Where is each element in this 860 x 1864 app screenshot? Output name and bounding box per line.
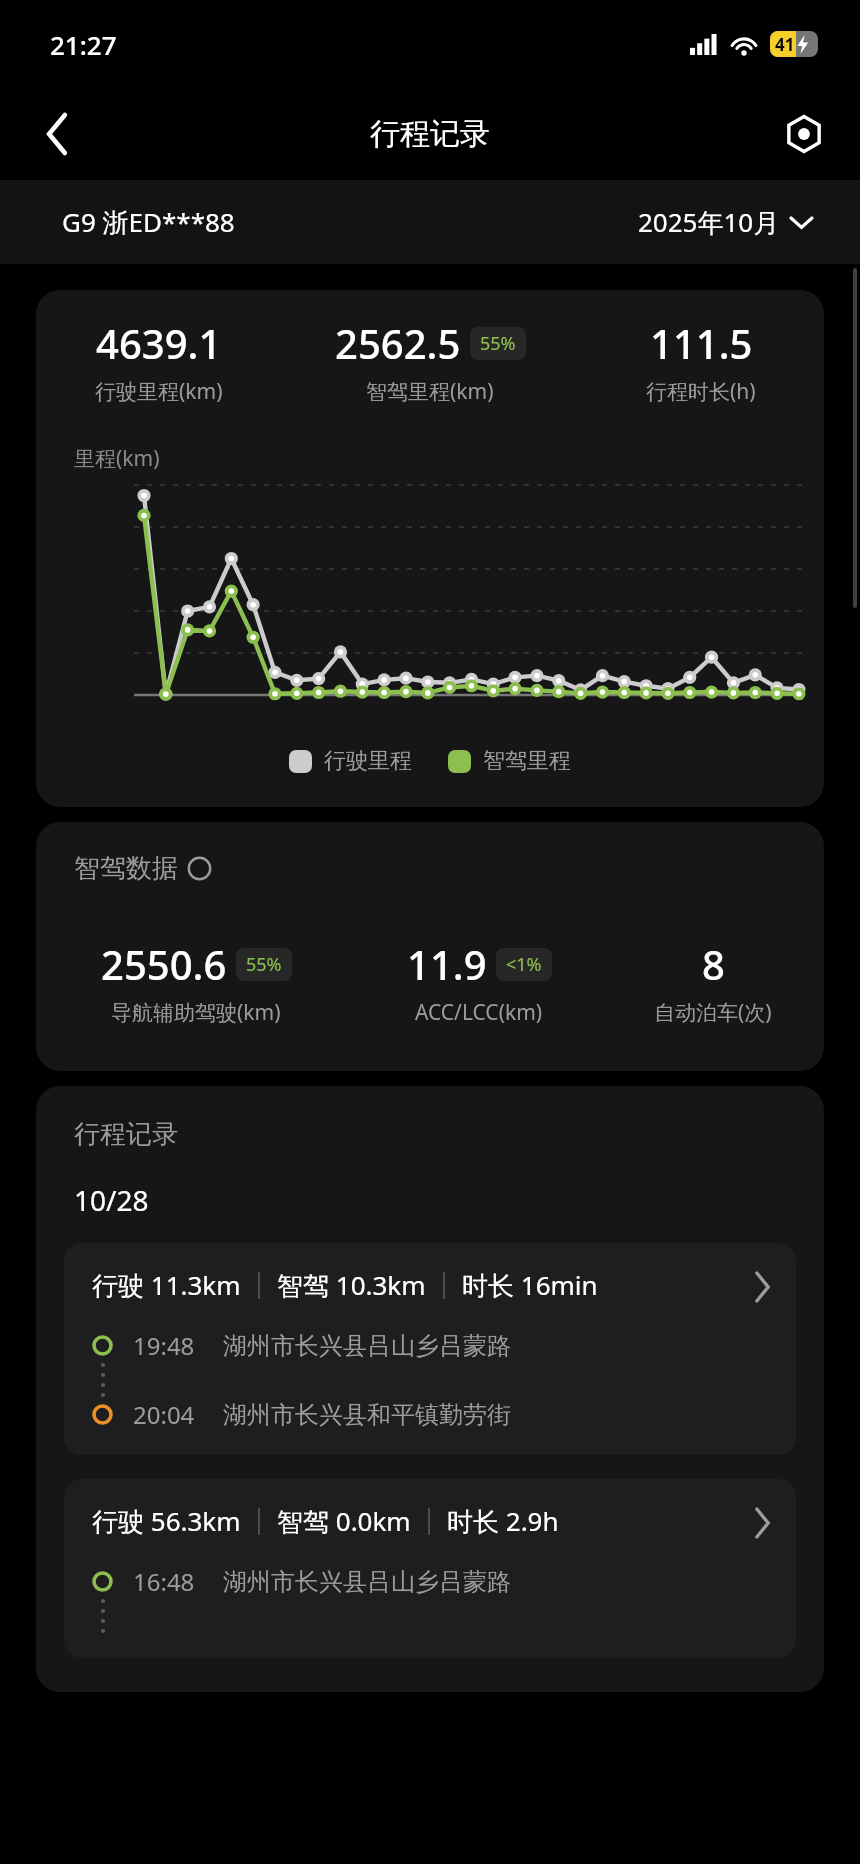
staticText: 2025年10月 [638,204,780,240]
staticText: G9 浙ED***88 [62,204,235,240]
button[interactable]: 4639.1 [36,290,824,807]
staticText: 行程时长(h) [646,377,756,406]
button[interactable]: 行驶 11.3km [64,1243,796,1455]
button[interactable]: Settings [774,104,834,164]
staticText: 行驶 11.3km [92,1267,241,1303]
staticText: 41 [775,33,795,56]
button[interactable]: 行驶 56.3km [64,1479,796,1658]
staticText: 智驾 10.3km [277,1267,426,1303]
staticText: 自动泊车(次) [654,998,772,1027]
staticText: 4639.1 [96,316,222,370]
button[interactable]: Back [28,105,86,163]
staticText: 10/28 [74,1181,149,1219]
staticText: 16:48 [133,1565,195,1598]
staticText: 智驾里程 [483,747,571,775]
staticText: 湖州市长兴县吕山乡吕蒙路 [223,1567,511,1597]
staticText: 55% [480,331,516,356]
staticText: 55% [246,952,282,977]
staticText: 湖州市长兴县和平镇勤劳街 [223,1400,511,1430]
staticText: 行驶 56.3km [92,1503,241,1539]
staticText: 智驾 0.0km [277,1503,411,1539]
staticText: 19:48 [133,1329,195,1362]
staticText: ACC/LCC(km) [415,998,543,1027]
staticText: 智驾数据 [74,852,178,885]
staticText: <1% [506,952,542,977]
staticText: 111.5 [650,316,753,370]
staticText: 行驶里程(km) [95,377,223,406]
staticText: 时长 2.9h [447,1503,559,1539]
staticText: 导航辅助驾驶(km) [111,998,281,1027]
staticText: 2562.5 [335,316,461,370]
staticText: 时长 16min [462,1267,598,1303]
staticText: 21:27 [50,27,117,62]
staticText: 智驾里程(km) [366,377,494,406]
staticText: 8 [702,937,725,991]
staticText: 20:04 [133,1398,195,1431]
button[interactable]: 智驾数据 [36,822,824,1071]
staticText: 湖州市长兴县吕山乡吕蒙路 [223,1331,511,1361]
staticText: 行驶里程 [324,747,412,775]
staticText: 2550.6 [101,937,227,991]
staticText: 行程记录 [74,1118,178,1151]
staticText: 11.9 [407,937,487,991]
staticText: 里程(km) [74,444,160,473]
button[interactable]: 2025年10月 [638,204,812,240]
staticText: 行程记录 [370,115,490,153]
